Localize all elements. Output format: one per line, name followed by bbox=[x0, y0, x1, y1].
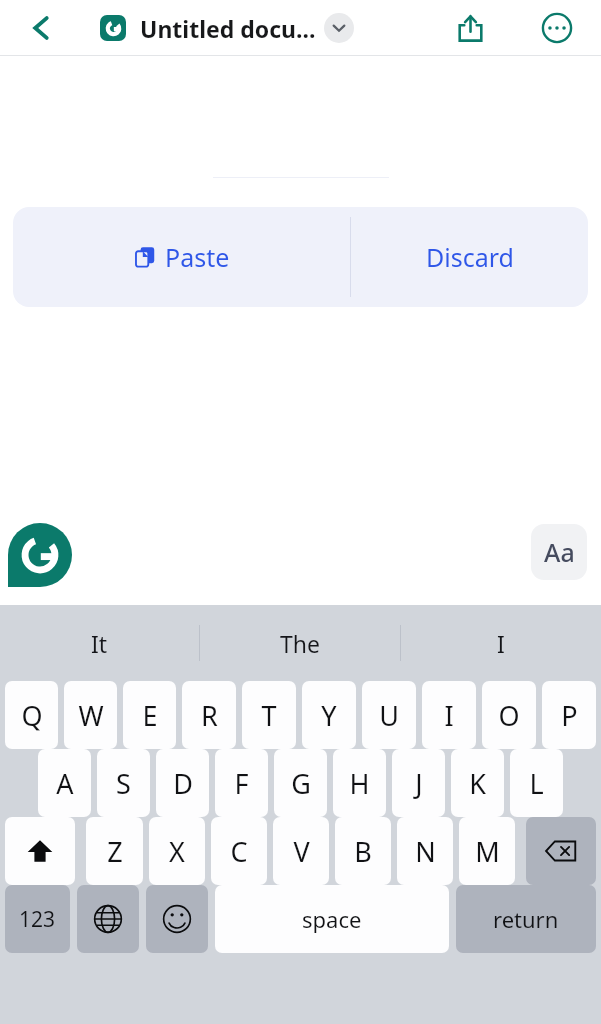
button[interactable]: R bbox=[182, 681, 236, 749]
staticText: space bbox=[302, 904, 362, 934]
button[interactable]: A bbox=[38, 749, 91, 817]
button[interactable]: Grammarly assistant bbox=[8, 523, 72, 587]
staticText: F bbox=[234, 765, 249, 802]
staticText: Discard bbox=[426, 240, 514, 274]
button[interactable]: T bbox=[242, 681, 296, 749]
staticText: I bbox=[444, 697, 454, 734]
button[interactable]: It bbox=[0, 605, 199, 681]
staticText: It bbox=[91, 628, 108, 659]
staticText: Q bbox=[21, 697, 43, 734]
button[interactable]: M bbox=[459, 817, 515, 885]
button[interactable]: Paste bbox=[13, 207, 350, 307]
button[interactable]: F bbox=[215, 749, 268, 817]
staticText: C bbox=[230, 833, 248, 870]
staticText: X bbox=[169, 833, 185, 870]
button[interactable]: Share bbox=[445, 3, 495, 53]
button[interactable]: D bbox=[156, 749, 209, 817]
button[interactable]: O bbox=[482, 681, 536, 749]
button[interactable]: Aa bbox=[531, 524, 587, 580]
staticText: D bbox=[173, 765, 193, 802]
button[interactable]: W bbox=[64, 681, 117, 749]
button[interactable]: More options bbox=[531, 2, 583, 54]
staticText: B bbox=[354, 833, 372, 870]
button[interactable]: U bbox=[362, 681, 416, 749]
staticText: P bbox=[561, 697, 578, 734]
staticText: T bbox=[261, 697, 277, 734]
button[interactable]: Shift bbox=[5, 817, 75, 885]
staticText: A bbox=[56, 765, 74, 802]
button[interactable]: I bbox=[422, 681, 476, 749]
staticText: O bbox=[498, 697, 520, 734]
staticText: The bbox=[280, 628, 320, 659]
staticText: 123 bbox=[19, 905, 56, 934]
button[interactable]: N bbox=[397, 817, 453, 885]
button[interactable]: C bbox=[211, 817, 267, 885]
button[interactable]: Discard bbox=[351, 207, 588, 307]
staticText: S bbox=[116, 765, 131, 802]
button[interactable]: L bbox=[510, 749, 563, 817]
staticText: I bbox=[497, 628, 505, 659]
button[interactable]: Backspace bbox=[526, 817, 596, 885]
staticText: L bbox=[529, 765, 544, 802]
button[interactable]: P bbox=[542, 681, 596, 749]
staticText: return bbox=[493, 904, 559, 934]
button[interactable]: Y bbox=[302, 681, 356, 749]
button[interactable]: Switch keyboard bbox=[77, 885, 139, 953]
button[interactable]: 123 bbox=[5, 885, 70, 953]
button[interactable]: The bbox=[200, 605, 400, 681]
button[interactable]: E bbox=[123, 681, 176, 749]
button[interactable]: V bbox=[273, 817, 329, 885]
staticText: Z bbox=[107, 833, 123, 870]
button[interactable]: Q bbox=[5, 681, 58, 749]
staticText: U bbox=[379, 697, 399, 734]
staticText: M bbox=[475, 833, 500, 870]
button[interactable]: K bbox=[451, 749, 504, 817]
button[interactable]: Emoji bbox=[146, 885, 208, 953]
staticText: Untitled docu... bbox=[140, 13, 316, 44]
button[interactable]: G bbox=[274, 749, 327, 817]
staticText: R bbox=[201, 697, 218, 734]
staticText: Y bbox=[321, 697, 337, 734]
staticText: N bbox=[415, 833, 436, 870]
button[interactable]: space bbox=[215, 885, 449, 953]
button[interactable]: Back bbox=[14, 0, 70, 55]
staticText: V bbox=[293, 833, 310, 870]
button[interactable]: H bbox=[333, 749, 386, 817]
staticText: E bbox=[142, 697, 158, 734]
button[interactable]: X bbox=[149, 817, 205, 885]
staticText: W bbox=[78, 697, 104, 734]
button[interactable]: Document options bbox=[324, 13, 354, 43]
staticText: Paste bbox=[165, 240, 230, 274]
staticText: J bbox=[415, 765, 423, 802]
staticText: G bbox=[291, 765, 311, 802]
button[interactable]: return bbox=[456, 885, 596, 953]
staticText: Aa bbox=[544, 535, 575, 569]
staticText: K bbox=[469, 765, 486, 802]
button[interactable]: Z bbox=[86, 817, 143, 885]
button[interactable]: B bbox=[335, 817, 391, 885]
button[interactable]: I bbox=[401, 605, 601, 681]
button[interactable]: J bbox=[392, 749, 445, 817]
button[interactable]: S bbox=[97, 749, 150, 817]
staticText: H bbox=[349, 765, 370, 802]
